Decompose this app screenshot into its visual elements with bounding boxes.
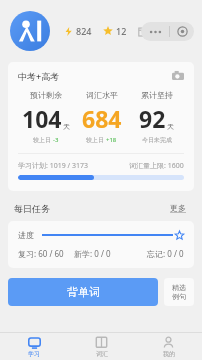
button[interactable]: 学习 bbox=[0, 333, 68, 360]
staticText: 精选 bbox=[172, 283, 186, 292]
other: Calendar bbox=[138, 27, 147, 36]
staticText: 天 bbox=[167, 122, 174, 131]
staticText: -3 bbox=[53, 136, 59, 144]
staticText: 较上日 bbox=[33, 136, 53, 144]
button[interactable]: 词汇 bbox=[68, 333, 135, 360]
staticText: 例句 bbox=[172, 292, 186, 301]
staticText: 104 bbox=[22, 103, 62, 134]
staticText: 学习计划: 1019 / 3173 bbox=[18, 161, 88, 171]
staticText: 新学: 0 / 0 bbox=[74, 248, 111, 259]
staticText: 我的 bbox=[163, 350, 175, 358]
button[interactable]: Camera bbox=[172, 70, 184, 82]
button[interactable]: 我的 bbox=[135, 333, 202, 360]
staticText: 更多 bbox=[170, 203, 186, 213]
button[interactable]: More options bbox=[141, 22, 169, 41]
staticText: 预计剩余 bbox=[30, 90, 62, 100]
button[interactable]: 精选 bbox=[164, 278, 194, 306]
staticText: 824 bbox=[76, 25, 92, 37]
staticText: 词汇水平 bbox=[86, 90, 118, 100]
button[interactable]: Close bbox=[170, 22, 194, 41]
staticText: +18 bbox=[106, 136, 117, 144]
staticText: 较上日 bbox=[86, 136, 106, 144]
staticText: 每日任务 bbox=[14, 203, 50, 214]
button[interactable]: 更多 bbox=[168, 201, 188, 215]
staticText: 背单词 bbox=[67, 285, 100, 299]
staticText: 进度 bbox=[18, 230, 34, 240]
button[interactable]: 中考+高考 bbox=[8, 62, 194, 191]
staticText: 12 bbox=[116, 25, 127, 37]
staticText: 复习: 60 / 60 bbox=[18, 248, 64, 259]
staticText: 词汇量上限: 1600 bbox=[129, 161, 184, 171]
button[interactable]: 进度 bbox=[8, 221, 194, 268]
button[interactable]: Profile avatar bbox=[10, 11, 50, 51]
staticText: 学习 bbox=[28, 350, 40, 358]
staticText: 今日未完成 bbox=[142, 136, 172, 144]
staticText: 中考+高考 bbox=[18, 70, 60, 82]
staticText: 忘记: 0 / 0 bbox=[147, 248, 184, 259]
staticText: 天 bbox=[63, 122, 70, 131]
staticText: 累计坚持 bbox=[141, 90, 173, 100]
staticText: 词汇 bbox=[96, 350, 108, 358]
button[interactable]: 背单词 bbox=[8, 278, 158, 306]
staticText: 92 bbox=[139, 103, 166, 134]
staticText: 684 bbox=[82, 103, 122, 134]
